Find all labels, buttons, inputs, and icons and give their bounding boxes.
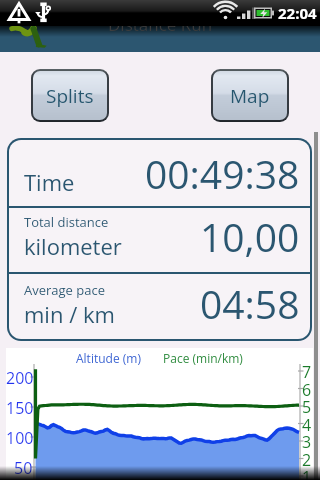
staticText: Map: [230, 83, 270, 109]
staticText: kilometer: [24, 231, 122, 261]
button[interactable]: Splits: [33, 71, 107, 120]
staticText: 5: [302, 396, 312, 416]
other: Wi-Fi: [217, 6, 234, 20]
button[interactable]: Map: [213, 71, 287, 120]
staticText: 6: [302, 379, 312, 399]
staticText: 200: [6, 367, 33, 387]
staticText: 150: [6, 397, 33, 417]
staticText: 2: [302, 449, 312, 469]
staticText: 1: [302, 466, 312, 480]
staticText: 100: [6, 427, 33, 447]
staticText: min / km: [24, 299, 115, 329]
staticText: 4: [302, 414, 312, 434]
staticText: 00:49:38: [145, 147, 300, 200]
staticText: Time: [24, 167, 75, 197]
staticText: Total distance: [24, 213, 109, 231]
staticText: 04:58: [200, 277, 300, 330]
staticText: 3: [302, 431, 312, 451]
other: Battery charging: [253, 6, 275, 20]
button[interactable]: Average pace: [9, 274, 310, 339]
button[interactable]: Time: [9, 140, 310, 206]
staticText: 10,00: [200, 210, 300, 263]
staticText: Pace (min/km): [163, 350, 243, 366]
staticText: Average pace: [24, 281, 105, 299]
staticText: 50: [14, 457, 33, 477]
other: Status notifications: [0, 0, 320, 26]
other: Signal: [236, 7, 251, 20]
staticText: 7: [302, 361, 312, 381]
staticText: Altitude (m): [76, 350, 141, 366]
button[interactable]: Total distance: [9, 208, 310, 272]
staticText: Distance Run: [108, 13, 213, 36]
staticText: 22:04: [278, 3, 317, 23]
staticText: Splits: [46, 83, 94, 109]
